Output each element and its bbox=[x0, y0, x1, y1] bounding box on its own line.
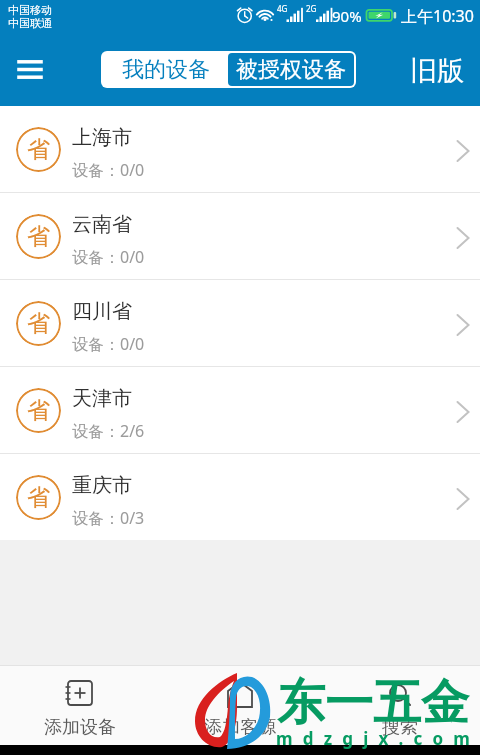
staticText: 搜索 bbox=[382, 716, 418, 739]
button[interactable]: 旧版 bbox=[403, 49, 471, 93]
button[interactable]: 省 bbox=[0, 193, 480, 279]
staticText: 90% bbox=[332, 6, 362, 26]
staticText: 我的设备 bbox=[122, 56, 210, 84]
staticText: 中国联通 bbox=[8, 16, 52, 30]
staticText: 省 bbox=[27, 135, 50, 164]
button[interactable]: 省 bbox=[0, 280, 480, 366]
staticText: 省 bbox=[27, 396, 50, 425]
staticText: 省 bbox=[27, 483, 50, 512]
staticText: 云南省 bbox=[72, 212, 132, 237]
staticText: 设备：0/0 bbox=[72, 333, 145, 355]
staticText: 添加客源 bbox=[204, 716, 276, 739]
staticText: 中国移动 bbox=[8, 3, 52, 17]
staticText: 东一五金 bbox=[277, 673, 469, 733]
staticText: 上午10:30 bbox=[401, 5, 474, 27]
button[interactable]: 搜索 bbox=[320, 666, 480, 745]
staticText: 上海市 bbox=[72, 125, 132, 150]
staticText: 添加设备 bbox=[44, 716, 116, 739]
button[interactable]: 省 bbox=[0, 454, 480, 540]
button[interactable]: 省 bbox=[0, 367, 480, 453]
staticText: mdzgjx.com bbox=[276, 727, 480, 750]
staticText: 4G bbox=[277, 3, 288, 14]
button[interactable]: 被授权设备 bbox=[228, 53, 354, 86]
staticText: 省 bbox=[27, 222, 50, 251]
staticText: 旧版 bbox=[410, 54, 464, 88]
button[interactable]: 添加设备 bbox=[0, 666, 160, 745]
staticText: 设备：2/6 bbox=[72, 420, 145, 442]
staticText: 天津市 bbox=[72, 386, 132, 411]
button[interactable]: Menu bbox=[8, 46, 52, 90]
staticText: 设备：0/0 bbox=[72, 159, 145, 181]
button[interactable]: 省 bbox=[0, 106, 480, 192]
staticText: 2G bbox=[306, 3, 317, 14]
staticText: 设备：0/0 bbox=[72, 246, 145, 268]
staticText: 被授权设备 bbox=[236, 56, 346, 84]
staticText: 设备：0/3 bbox=[72, 507, 145, 529]
button[interactable]: 添加客源 bbox=[160, 666, 320, 745]
staticText: 四川省 bbox=[72, 299, 132, 324]
staticText: 重庆市 bbox=[72, 473, 132, 498]
staticText: 省 bbox=[27, 309, 50, 338]
button[interactable]: 我的设备 bbox=[103, 53, 228, 86]
